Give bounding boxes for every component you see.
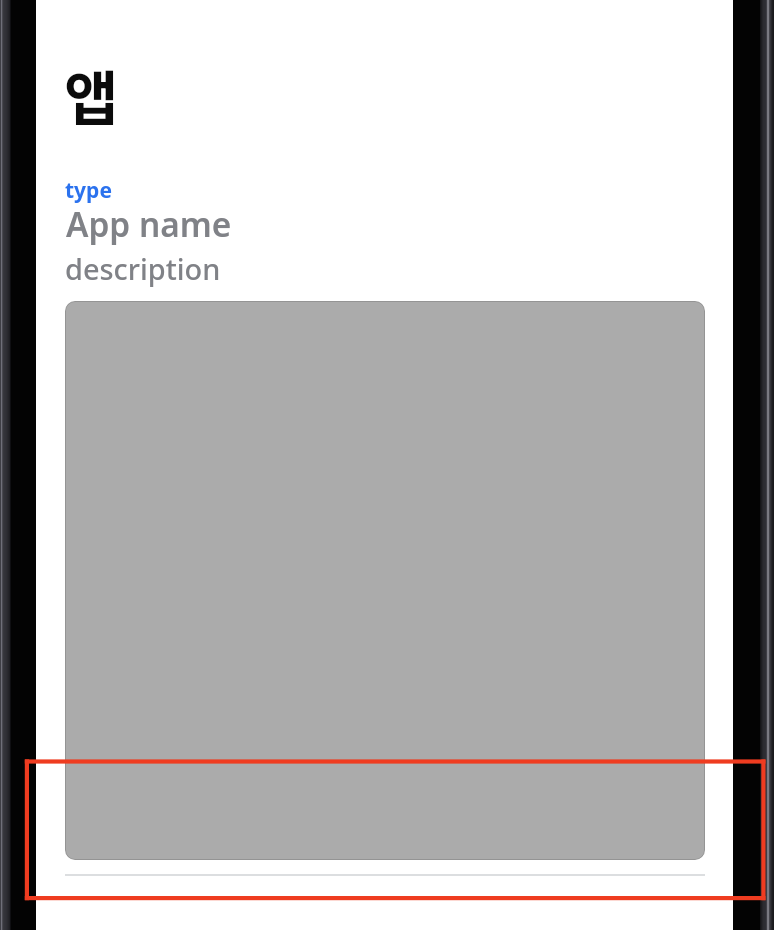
- staticText: type: [65, 176, 112, 205]
- button[interactable]: type: [65, 176, 705, 288]
- staticText: App name: [66, 201, 232, 246]
- staticText: 앱: [64, 52, 119, 136]
- button[interactable]: App screenshot: [65, 301, 705, 860]
- staticText: description: [65, 249, 221, 287]
- button[interactable]: 앱 — home: [54, 44, 122, 128]
